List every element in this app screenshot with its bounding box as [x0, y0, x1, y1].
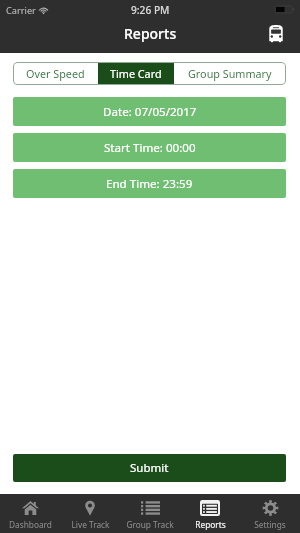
- button[interactable]: Settings: [240, 494, 300, 533]
- button[interactable]: Group Track: [120, 494, 180, 533]
- staticText: Dashboard: [9, 519, 52, 530]
- staticText: Time Card: [110, 66, 162, 81]
- button[interactable]: Live Track: [60, 494, 120, 533]
- button[interactable]: Over Speed: [13, 62, 98, 85]
- button[interactable]: Submit: [13, 454, 286, 482]
- staticText: Group Track: [126, 519, 174, 530]
- staticText: Reports: [124, 24, 177, 43]
- staticText: Live Track: [71, 519, 110, 530]
- staticText: Date: 07/05/2017: [103, 104, 197, 120]
- button[interactable]: Start Time: 00:00: [13, 133, 286, 162]
- staticText: Start Time: 00:00: [104, 140, 196, 156]
- staticText: Submit: [130, 460, 169, 476]
- staticText: 9:26 PM: [131, 3, 170, 17]
- button[interactable]: Dashboard: [0, 494, 60, 533]
- button[interactable]: End Time: 23:59: [13, 169, 286, 198]
- button[interactable]: Date: 07/05/2017: [13, 97, 286, 126]
- staticText: Over Speed: [26, 66, 85, 81]
- button[interactable]: Group Summary: [174, 62, 286, 85]
- staticText: Group Summary: [188, 66, 272, 81]
- button[interactable]: Reports: [180, 494, 240, 533]
- button[interactable]: Vehicles: [263, 20, 289, 46]
- staticText: End Time: 23:59: [106, 176, 193, 192]
- staticText: Carrier: [6, 4, 36, 17]
- button[interactable]: Time Card: [98, 62, 174, 85]
- staticText: Reports: [195, 519, 226, 530]
- staticText: Settings: [254, 519, 286, 530]
